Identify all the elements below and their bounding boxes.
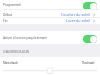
button[interactable]: Chaleur des couleurs xyxy=(0,66,100,75)
staticText: Plus chaude xyxy=(82,61,95,65)
button[interactable]: Activer à la main jusqu'à demain xyxy=(83,35,97,43)
staticText: Fin xyxy=(3,19,8,23)
staticText: Moins chaude xyxy=(3,61,18,65)
staticText: Activer à la main jusqu'à demain xyxy=(3,36,47,40)
button[interactable]: Début xyxy=(0,10,100,19)
button[interactable]: Programmé xyxy=(83,2,97,10)
button[interactable]: Activer à la main jusqu'à demain xyxy=(0,31,100,44)
button[interactable]: Fin xyxy=(0,16,100,25)
staticText: CHALEUR DES COULEURS xyxy=(3,50,29,54)
staticText: Lever du soleil xyxy=(66,18,91,23)
staticText: Programmé xyxy=(3,3,21,7)
button[interactable]: Programmé xyxy=(0,0,100,9)
staticText: Début xyxy=(3,13,13,17)
staticText: Coucher du soleil xyxy=(61,12,91,17)
